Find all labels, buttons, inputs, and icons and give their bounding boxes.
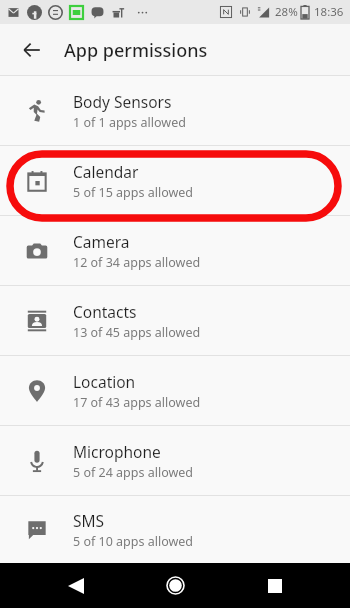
button[interactable]: Camera bbox=[0, 216, 350, 285]
staticText: Camera bbox=[73, 231, 130, 252]
staticText: 5 of 10 apps allowed bbox=[73, 533, 194, 550]
staticText: Calendar bbox=[73, 161, 139, 182]
staticText: 13 of 45 apps allowed bbox=[73, 324, 201, 341]
staticText: Body Sensors bbox=[73, 91, 172, 112]
button[interactable]: Recents bbox=[251, 563, 299, 608]
staticText: SMS bbox=[73, 510, 105, 531]
staticText: Location bbox=[73, 371, 136, 392]
staticText: Contacts bbox=[73, 301, 137, 322]
staticText: App permissions bbox=[64, 38, 208, 63]
staticText: 5 of 15 apps allowed bbox=[73, 184, 194, 201]
button[interactable]: Contacts bbox=[0, 286, 350, 355]
button[interactable]: Back bbox=[0, 24, 64, 76]
button[interactable]: Location bbox=[0, 356, 350, 425]
staticText: 17 of 43 apps allowed bbox=[73, 394, 201, 411]
button[interactable]: Calendar bbox=[0, 146, 350, 215]
button[interactable]: SMS bbox=[0, 496, 350, 563]
staticText: 18:36 bbox=[314, 4, 344, 20]
staticText: 1 of 1 apps allowed bbox=[73, 114, 186, 131]
button[interactable]: Body Sensors bbox=[0, 76, 350, 145]
button[interactable]: Back bbox=[52, 563, 100, 608]
staticText: Microphone bbox=[73, 441, 161, 462]
staticText: 5 of 24 apps allowed bbox=[73, 464, 194, 481]
staticText: 12 of 34 apps allowed bbox=[73, 254, 201, 271]
button[interactable]: Microphone bbox=[0, 426, 350, 495]
staticText: 28% bbox=[275, 4, 298, 20]
button[interactable]: Home bbox=[151, 563, 199, 608]
